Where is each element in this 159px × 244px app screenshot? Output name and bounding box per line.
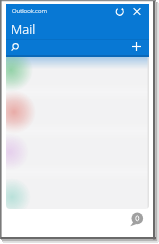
staticText: Mail — [11, 20, 36, 38]
button[interactable] — [128, 209, 148, 229]
button[interactable] — [130, 5, 144, 19]
staticText: Outlook.com — [12, 7, 47, 15]
button[interactable] — [6, 40, 126, 54]
button[interactable] — [129, 40, 145, 54]
button[interactable] — [113, 5, 127, 19]
